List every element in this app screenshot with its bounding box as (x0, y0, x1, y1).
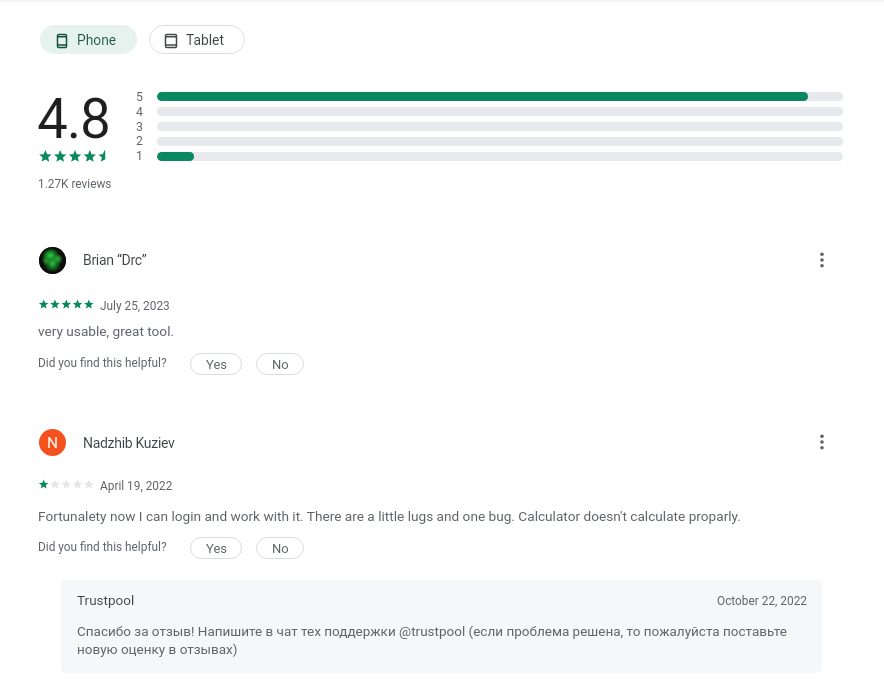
staticText: 1 (126, 149, 143, 163)
staticText: 4.8 (37, 87, 110, 151)
staticText: very usable, great tool. (38, 323, 175, 339)
staticText: No (272, 541, 289, 556)
staticText: Fortunalety now I can login and work wit… (38, 508, 741, 524)
staticText: 1.27K reviews (38, 177, 112, 191)
staticText: 2 (126, 134, 143, 148)
staticText: Yes (206, 541, 227, 556)
staticText: July 25, 2023 (100, 299, 170, 313)
staticText: Did you find this helpful? (38, 356, 167, 370)
staticText: Спасибо за отзыв! Напишите в чат тех под… (77, 623, 799, 657)
staticText: Tablet (186, 32, 224, 48)
staticText: October 22, 2022 (717, 594, 807, 608)
staticText: Trustpool (77, 592, 135, 608)
staticText: April 19, 2022 (100, 479, 173, 493)
button[interactable]: No (256, 537, 304, 559)
staticText: Phone (77, 32, 117, 48)
staticText: 4 (126, 105, 143, 119)
staticText: 3 (126, 120, 143, 134)
staticText: Nadzhib Kuziev (83, 435, 175, 451)
button[interactable]: Tablet (149, 25, 245, 54)
button[interactable]: Yes (190, 537, 242, 559)
button[interactable]: More options (810, 430, 834, 454)
staticText: No (272, 357, 289, 372)
button[interactable]: Phone (40, 25, 137, 54)
staticText: 5 (126, 90, 143, 104)
staticText: Did you find this helpful? (38, 540, 167, 554)
button[interactable]: No (256, 353, 304, 375)
staticText: Brian “Drc” (83, 252, 147, 268)
staticText: Yes (206, 357, 227, 372)
button[interactable]: More options (810, 248, 834, 272)
staticText: N (47, 434, 59, 452)
button[interactable]: Yes (190, 353, 242, 375)
